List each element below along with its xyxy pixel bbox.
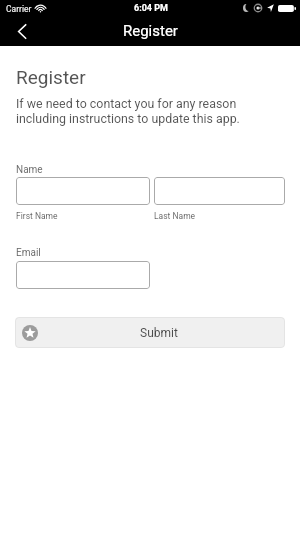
staticText: Register bbox=[16, 67, 86, 89]
staticText: If we need to contact you for any reason… bbox=[16, 96, 240, 126]
staticText: Register bbox=[123, 22, 178, 40]
staticText: 6:04 PM bbox=[134, 3, 168, 14]
staticText: Name bbox=[16, 163, 43, 175]
button[interactable]: Back bbox=[0, 18, 44, 44]
staticText: First Name bbox=[16, 211, 58, 221]
staticText: Last Name bbox=[154, 211, 196, 221]
staticText: Email bbox=[16, 246, 41, 258]
staticText: Submit bbox=[140, 326, 178, 340]
button[interactable]: Text field bbox=[154, 177, 285, 205]
button[interactable]: Text field bbox=[16, 177, 150, 205]
button[interactable]: Text field bbox=[16, 261, 150, 289]
staticText: Carrier bbox=[6, 4, 32, 14]
button[interactable]: Submit bbox=[15, 317, 285, 348]
